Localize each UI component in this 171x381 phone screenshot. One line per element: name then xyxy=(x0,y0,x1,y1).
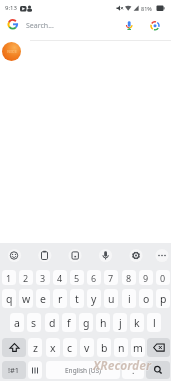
button[interactable]: 4 xyxy=(53,270,67,285)
staticText: k xyxy=(134,316,140,330)
button[interactable]: t xyxy=(70,289,84,308)
button[interactable]: . xyxy=(122,361,144,379)
button[interactable]: 9 xyxy=(139,270,153,285)
button[interactable] xyxy=(98,248,113,263)
button[interactable]: n xyxy=(114,338,128,357)
staticText: 5 xyxy=(74,272,80,284)
button[interactable] xyxy=(155,248,170,263)
button[interactable]: w xyxy=(19,289,33,308)
staticText: c xyxy=(67,341,73,355)
staticText: j xyxy=(119,316,122,330)
button[interactable]: p xyxy=(156,289,170,308)
staticText: XRecorder xyxy=(93,356,151,372)
staticText: 1 xyxy=(6,272,12,284)
button[interactable]: k xyxy=(130,313,144,332)
staticText: Search... xyxy=(26,21,54,31)
staticText: g xyxy=(83,316,90,330)
button[interactable] xyxy=(146,361,170,379)
staticText: w xyxy=(22,292,31,306)
button[interactable]: 0 xyxy=(156,270,170,285)
button[interactable]: a xyxy=(10,313,24,332)
button[interactable]: l xyxy=(147,313,161,332)
staticText: z xyxy=(33,341,38,355)
staticText: f xyxy=(67,316,71,330)
button[interactable]: English (US) xyxy=(46,361,120,379)
button[interactable] xyxy=(7,248,22,263)
button[interactable]: z xyxy=(28,338,42,357)
staticText: b xyxy=(101,341,108,355)
button[interactable]: f xyxy=(62,313,76,332)
button[interactable] xyxy=(28,361,42,379)
staticText: s xyxy=(31,316,37,330)
button[interactable]: r xyxy=(53,289,67,308)
staticText: p xyxy=(160,292,167,306)
staticText: XRecorder xyxy=(93,358,151,374)
button[interactable]: q xyxy=(2,289,16,308)
staticText: u xyxy=(108,292,115,306)
staticText: x xyxy=(50,341,56,355)
staticText: v xyxy=(84,341,90,355)
staticText: n xyxy=(118,341,125,355)
staticText: 9 xyxy=(143,272,149,284)
button[interactable]: 5 xyxy=(70,270,84,285)
button[interactable] xyxy=(147,338,170,357)
staticText: 9:13 xyxy=(5,4,17,12)
staticText: 81% xyxy=(141,5,152,12)
button[interactable]: 8 xyxy=(122,270,136,285)
staticText: 4 xyxy=(57,272,63,284)
staticText: a xyxy=(14,316,20,330)
button[interactable]: u xyxy=(104,289,118,308)
button[interactable]: 1 xyxy=(2,270,16,285)
button[interactable]: o xyxy=(139,289,153,308)
staticText: o xyxy=(143,292,150,306)
button[interactable] xyxy=(37,248,52,263)
staticText: h xyxy=(100,316,107,330)
button[interactable]: Search... xyxy=(0,16,171,40)
staticText: m xyxy=(133,341,143,355)
button[interactable]: i xyxy=(122,289,136,308)
button[interactable] xyxy=(68,248,83,263)
button[interactable]: !#1 xyxy=(2,361,26,379)
staticText: q xyxy=(6,292,13,306)
staticText: 8 xyxy=(126,272,132,284)
button[interactable]: 7 xyxy=(104,270,118,285)
staticText: XRecorder xyxy=(92,357,150,373)
button[interactable]: 3 xyxy=(36,270,50,285)
button[interactable] xyxy=(129,248,144,263)
button[interactable]: h xyxy=(96,313,110,332)
staticText: y xyxy=(91,292,97,306)
staticText: . xyxy=(132,364,135,376)
staticText: r xyxy=(58,292,63,306)
staticText: 0 xyxy=(160,272,166,284)
button[interactable]: c xyxy=(63,338,77,357)
button[interactable]: b xyxy=(97,338,111,357)
button[interactable] xyxy=(2,338,26,357)
staticText: i xyxy=(128,292,131,306)
staticText: English (US) xyxy=(65,366,102,375)
button[interactable]: j xyxy=(113,313,127,332)
staticText: 2 xyxy=(23,272,29,284)
button[interactable]: v xyxy=(80,338,94,357)
staticText: 7 xyxy=(108,272,114,284)
button[interactable]: 6 xyxy=(87,270,101,285)
staticText: 6 xyxy=(91,272,97,284)
staticText: XRecorder xyxy=(94,357,152,373)
button[interactable]: g xyxy=(79,313,93,332)
button[interactable]: m xyxy=(131,338,145,357)
button[interactable]: d xyxy=(45,313,59,332)
staticText: NICE xyxy=(7,49,17,54)
button[interactable]: s xyxy=(27,313,41,332)
button[interactable]: 2 xyxy=(19,270,33,285)
staticText: !#1 xyxy=(8,365,20,375)
button[interactable]: NICE xyxy=(2,42,21,61)
button[interactable]: e xyxy=(36,289,50,308)
staticText: e xyxy=(40,292,46,306)
staticText: t xyxy=(75,292,79,306)
staticText: 3 xyxy=(40,272,46,284)
button[interactable]: x xyxy=(46,338,60,357)
staticText: d xyxy=(49,316,56,330)
staticText: XRecorder xyxy=(93,357,151,373)
staticText: l xyxy=(153,316,156,330)
button[interactable]: y xyxy=(87,289,101,308)
